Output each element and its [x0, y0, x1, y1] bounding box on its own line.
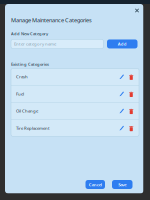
staticText: Cancel	[89, 182, 102, 187]
button[interactable]: Edit Oil Change	[117, 103, 126, 119]
button[interactable]: Close	[132, 5, 142, 15]
button[interactable]: Add	[107, 39, 137, 48]
button[interactable]: Delete Oil Change	[126, 103, 136, 119]
staticText: Add	[118, 41, 127, 47]
button[interactable]: Delete Crash	[126, 68, 136, 85]
staticText: Existing Categories	[11, 61, 49, 67]
staticText: Tire Replacement	[16, 125, 50, 131]
staticText: Enter category name	[14, 41, 56, 47]
button[interactable]: Delete Tire Replacement	[126, 120, 136, 136]
button[interactable]: Delete Fuel	[126, 85, 136, 102]
button[interactable]: Edit Fuel	[117, 85, 126, 102]
button[interactable]: Cancel	[85, 180, 105, 189]
staticText: Save	[118, 182, 126, 187]
staticText: Manage Maintenance Categories	[11, 16, 92, 24]
button[interactable]: Save	[112, 180, 132, 189]
staticText: Crash	[16, 74, 28, 80]
button[interactable]: Edit Crash	[117, 68, 126, 85]
staticText: Fuel	[16, 91, 24, 97]
staticText: Oil Change	[16, 108, 38, 114]
staticText: Add New Category	[11, 31, 48, 36]
button[interactable]: Edit Tire Replacement	[117, 120, 126, 136]
